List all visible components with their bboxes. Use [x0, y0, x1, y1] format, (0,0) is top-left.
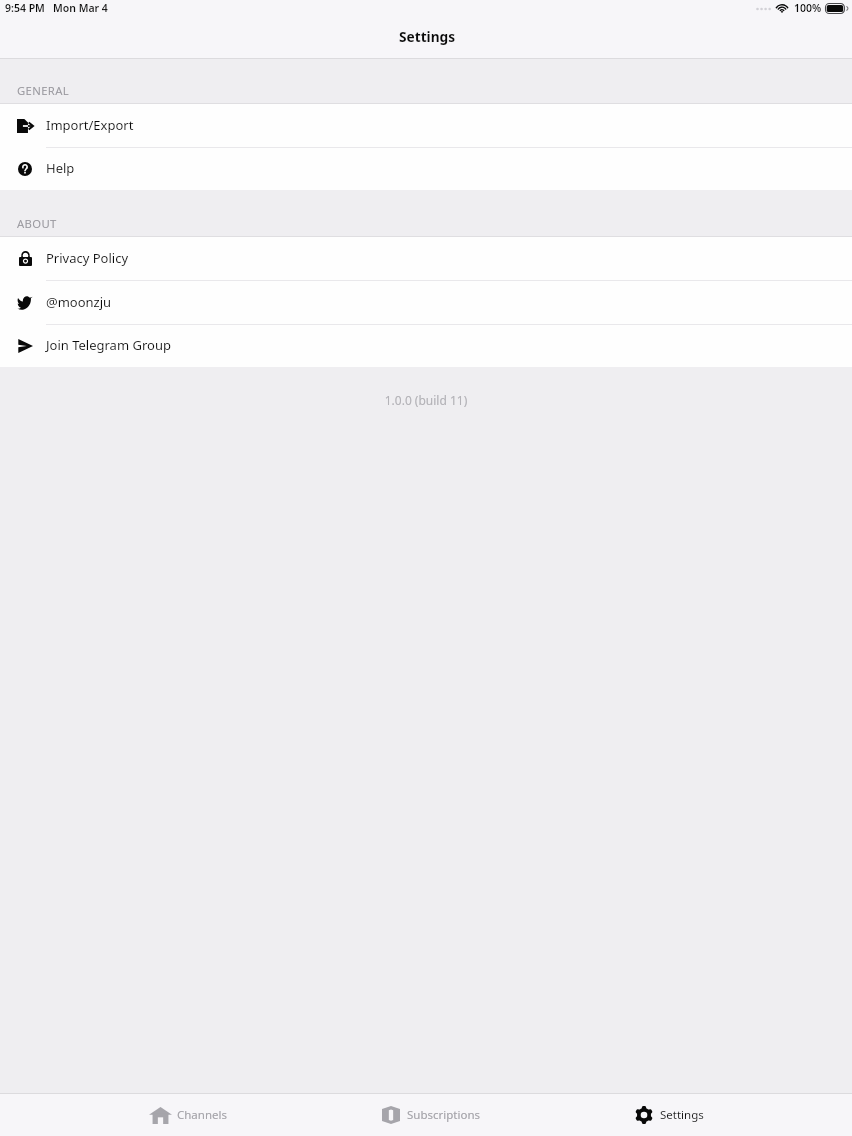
staticText: GENERAL: [17, 83, 69, 98]
staticText: Subscriptions: [407, 1107, 481, 1123]
staticText: @moonzju: [46, 293, 112, 311]
button[interactable]: Settings: [633, 1094, 706, 1136]
staticText: Import/Export: [46, 116, 134, 134]
staticText: 100%: [794, 1, 822, 15]
button[interactable]: Channels: [147, 1094, 230, 1136]
button[interactable]: Privacy Policy: [0, 237, 852, 280]
staticText: 1.0.0 (build 11): [0, 392, 852, 408]
staticText: 9:54 PM: [5, 1, 45, 15]
staticText: Join Telegram Group: [46, 336, 171, 354]
staticText: Settings: [660, 1107, 704, 1123]
button[interactable]: Subscriptions: [380, 1094, 483, 1136]
staticText: Channels: [177, 1107, 228, 1123]
button[interactable]: @moonzju: [0, 281, 852, 324]
staticText: ABOUT: [17, 216, 57, 231]
staticText: Mon Mar 4: [53, 1, 108, 15]
button[interactable]: Help: [0, 148, 852, 190]
staticText: Settings: [399, 27, 456, 46]
staticText: Help: [46, 159, 75, 177]
staticText: Privacy Policy: [46, 249, 129, 267]
button[interactable]: Join Telegram Group: [0, 325, 852, 367]
button[interactable]: Import/Export: [0, 104, 852, 147]
